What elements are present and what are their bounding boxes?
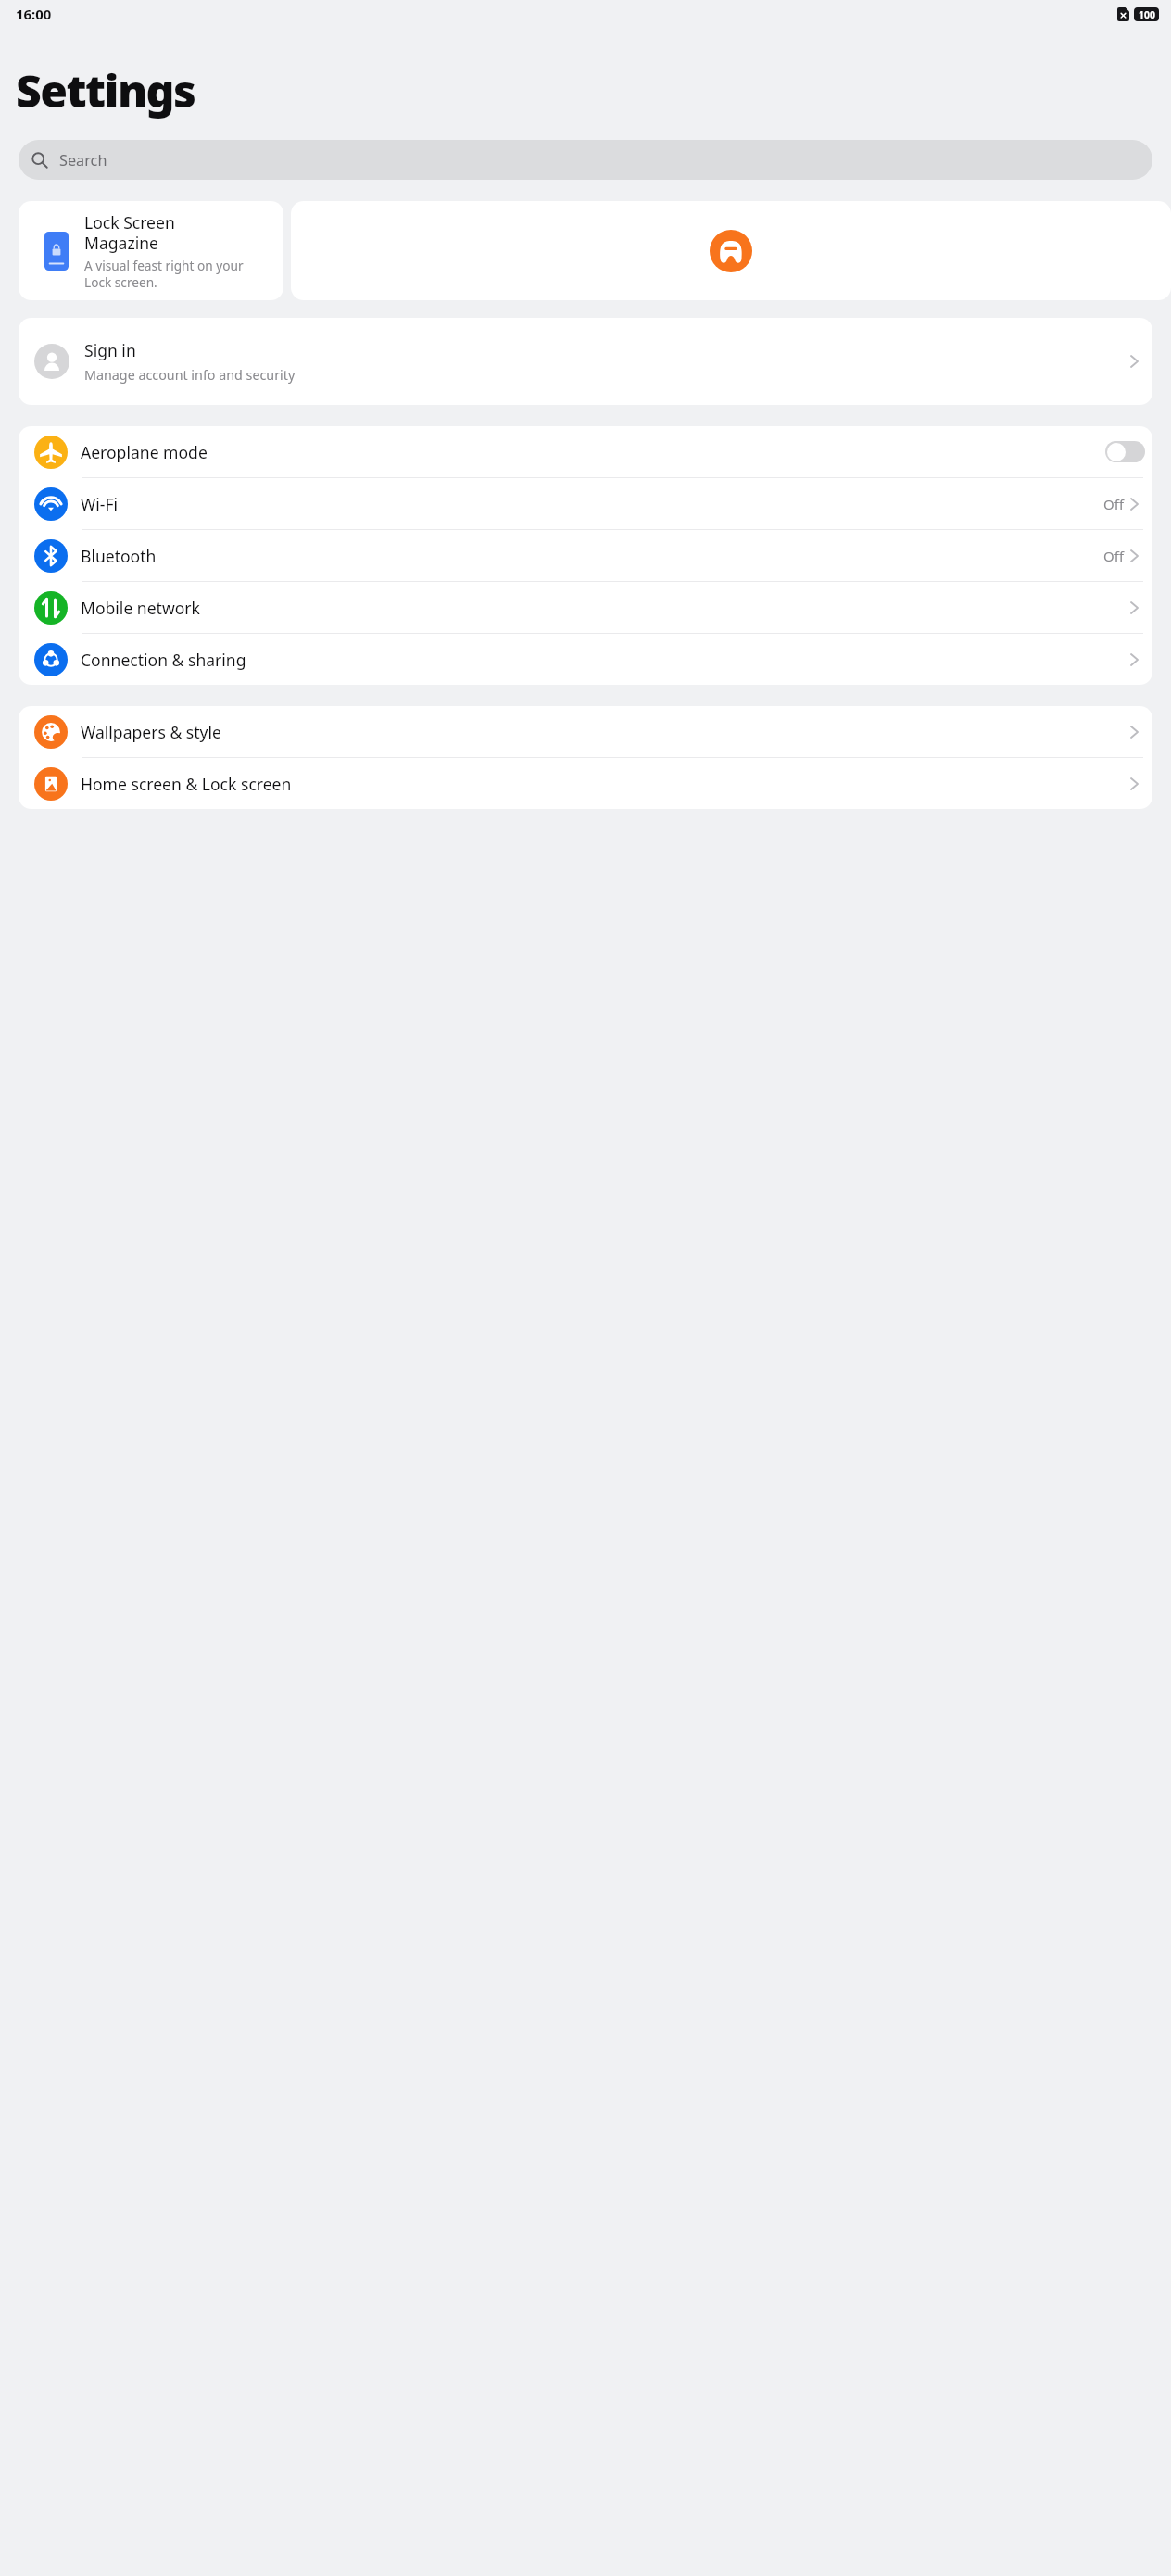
button[interactable]: Bluetooth xyxy=(19,530,1152,581)
staticText: Aeroplane mode xyxy=(81,441,1105,463)
staticText: Settings xyxy=(16,60,195,121)
button[interactable]: Mobile network xyxy=(19,582,1152,633)
staticText: Off xyxy=(1103,495,1124,513)
staticText: Off xyxy=(1103,547,1124,565)
staticText: Manage account info and security xyxy=(84,366,296,384)
staticText: A visual feast right on your Lock screen… xyxy=(84,257,244,291)
staticText: 16:00 xyxy=(16,5,52,23)
button[interactable]: Aeroplane mode xyxy=(19,426,1152,477)
staticText: Wallpapers & style xyxy=(81,721,1129,743)
staticText: Bluetooth xyxy=(81,545,1103,567)
staticText: Home screen & Lock screen xyxy=(81,773,1129,795)
button[interactable]: Wallpapers & style xyxy=(19,706,1152,757)
button[interactable]: Search xyxy=(19,140,1152,180)
staticText: Mobile network xyxy=(81,597,1129,619)
button[interactable]: Lock Screen Magazine xyxy=(19,201,283,300)
staticText: Connection & sharing xyxy=(81,649,1129,671)
staticText: Sign in xyxy=(84,339,136,361)
button[interactable]: Home screen & Lock screen xyxy=(19,758,1152,809)
staticText: 100 xyxy=(1139,8,1155,21)
staticText: Search xyxy=(59,150,107,170)
button[interactable]: Connection & sharing xyxy=(19,634,1152,685)
button[interactable]: Wi-Fi xyxy=(19,478,1152,529)
button[interactable]: Game Turbo xyxy=(291,201,1171,300)
button[interactable]: Sign in xyxy=(19,318,1152,405)
staticText: Lock Screen Magazine xyxy=(84,211,175,254)
staticText: Wi-Fi xyxy=(81,493,1103,515)
